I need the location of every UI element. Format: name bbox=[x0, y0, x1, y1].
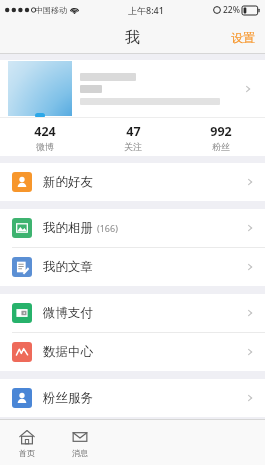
button[interactable]: 我的文章 bbox=[0, 248, 265, 286]
staticText: 22% bbox=[223, 4, 240, 16]
button[interactable]: 粉丝服务 bbox=[0, 379, 265, 417]
staticText: 数据中心 bbox=[43, 344, 93, 360]
staticText: (166) bbox=[97, 222, 118, 234]
button[interactable]: 992 bbox=[177, 118, 265, 156]
button[interactable]: 424 bbox=[0, 118, 89, 156]
staticText: 上午8:41 bbox=[128, 4, 164, 16]
staticText: 我的文章 bbox=[43, 259, 93, 275]
staticText: 粉丝 bbox=[212, 141, 230, 152]
staticText: 47 bbox=[126, 123, 141, 140]
staticText: 992 bbox=[210, 123, 232, 140]
staticText: 我的相册 bbox=[43, 220, 93, 236]
staticText: 首页 bbox=[19, 448, 35, 458]
staticText: 微博 bbox=[36, 141, 54, 152]
staticText: 424 bbox=[34, 123, 56, 140]
button[interactable] bbox=[0, 60, 265, 117]
staticText: 粉丝服务 bbox=[43, 390, 93, 406]
staticText: 消息 bbox=[72, 448, 88, 458]
button[interactable]: 新的好友 bbox=[0, 163, 265, 201]
button[interactable]: 消息 bbox=[53, 420, 106, 465]
staticText: 我 bbox=[125, 28, 140, 47]
button[interactable]: 设置 bbox=[221, 24, 265, 51]
button[interactable]: 数据中心 bbox=[0, 333, 265, 371]
staticText: 中国移动 bbox=[35, 5, 67, 15]
staticText: 新的好友 bbox=[43, 174, 93, 190]
staticText: 微博支付 bbox=[43, 305, 93, 321]
button[interactable]: 47 bbox=[89, 118, 177, 156]
button[interactable]: 微博支付 bbox=[0, 294, 265, 332]
staticText: 设置 bbox=[231, 30, 255, 45]
button[interactable]: 首页 bbox=[0, 420, 53, 465]
staticText: 关注 bbox=[124, 141, 142, 152]
button[interactable]: 我的相册 bbox=[0, 209, 265, 247]
